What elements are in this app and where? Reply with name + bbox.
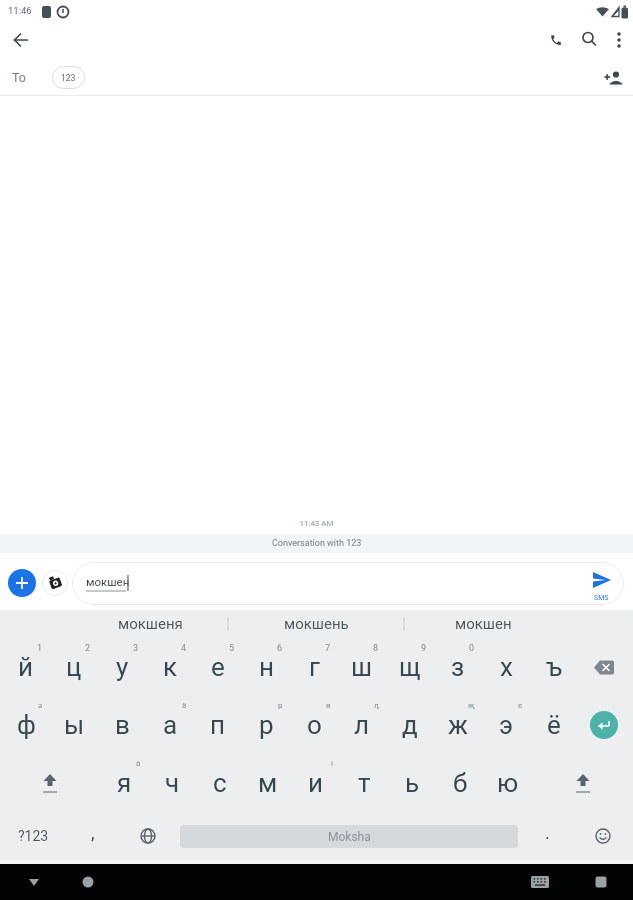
staticText: з xyxy=(451,652,465,682)
button[interactable]: ж xyxy=(434,696,482,754)
button[interactable] xyxy=(0,754,100,812)
button[interactable]: в xyxy=(98,696,146,754)
button[interactable]: ё xyxy=(530,696,578,754)
button[interactable]: э xyxy=(482,696,530,754)
button[interactable]: ?123 xyxy=(0,812,66,860)
button[interactable]: мокшеня xyxy=(75,610,225,638)
button[interactable]: ц xyxy=(50,638,98,696)
button[interactable] xyxy=(598,64,628,94)
staticText: я xyxy=(117,768,132,798)
staticText: ө xyxy=(326,701,331,710)
button[interactable] xyxy=(541,25,571,55)
button[interactable]: р xyxy=(242,696,290,754)
button[interactable]: мокшен xyxy=(72,562,624,605)
staticText: 1 xyxy=(37,643,43,654)
button[interactable] xyxy=(605,25,633,53)
button[interactable]: г xyxy=(290,638,338,696)
button[interactable]: с xyxy=(196,754,244,812)
button[interactable]: н xyxy=(242,638,290,696)
button[interactable]: ь xyxy=(388,754,436,812)
button[interactable] xyxy=(532,754,633,812)
button[interactable]: мокшен xyxy=(408,610,558,638)
staticText: ч xyxy=(165,768,180,798)
staticText: 3 xyxy=(133,643,139,654)
button[interactable] xyxy=(572,812,633,860)
staticText: к xyxy=(163,652,178,682)
button[interactable]: а xyxy=(146,696,194,754)
staticText: ?123 xyxy=(18,828,49,844)
staticText: ä xyxy=(182,701,187,710)
button[interactable]: я xyxy=(100,754,148,812)
staticText: л xyxy=(354,710,370,740)
button[interactable] xyxy=(120,812,176,860)
button[interactable]: Moksha xyxy=(176,812,522,860)
staticText: а xyxy=(163,710,178,740)
staticText: у xyxy=(116,652,129,682)
staticText: й xyxy=(18,652,34,682)
staticText: и xyxy=(308,768,324,798)
staticText: с xyxy=(213,768,227,798)
staticText: х xyxy=(500,652,513,682)
button[interactable]: х xyxy=(482,638,530,696)
button[interactable]: о xyxy=(290,696,338,754)
button[interactable]: ч xyxy=(148,754,196,812)
button[interactable] xyxy=(6,25,38,57)
staticText: 5 xyxy=(229,643,235,654)
button[interactable] xyxy=(20,868,48,896)
button[interactable]: к xyxy=(146,638,194,696)
staticText: т xyxy=(358,768,371,798)
button[interactable]: . xyxy=(522,812,572,860)
button[interactable]: 123 xyxy=(52,66,85,89)
button[interactable]: й xyxy=(2,638,50,696)
button[interactable] xyxy=(587,868,615,896)
staticText: ю xyxy=(497,768,519,798)
staticText: г xyxy=(309,652,320,682)
staticText: 11:46 xyxy=(8,5,32,16)
button[interactable]: щ xyxy=(386,638,434,696)
button[interactable]: т xyxy=(340,754,388,812)
staticText: 7 xyxy=(325,643,331,654)
staticText: ъ xyxy=(546,652,563,682)
button[interactable]: SMS xyxy=(583,566,619,602)
button[interactable]: у xyxy=(98,638,146,696)
staticText: ӓ xyxy=(136,759,141,768)
staticText: ф xyxy=(17,710,36,740)
staticText: мокшеня xyxy=(118,615,183,633)
button[interactable] xyxy=(578,696,621,754)
staticText: в xyxy=(115,710,130,740)
staticText: є xyxy=(518,701,523,710)
button[interactable]: ф xyxy=(2,696,50,754)
staticText: Moksha xyxy=(328,830,371,844)
staticText: 123 xyxy=(61,73,76,83)
button[interactable] xyxy=(578,638,621,696)
button[interactable] xyxy=(8,569,36,597)
button[interactable]: и xyxy=(292,754,340,812)
button[interactable] xyxy=(74,868,102,896)
button[interactable]: ъ xyxy=(530,638,578,696)
staticText: п xyxy=(210,710,226,740)
button[interactable]: ы xyxy=(50,696,98,754)
button[interactable]: м xyxy=(244,754,292,812)
staticText: о xyxy=(307,710,322,740)
staticText: , xyxy=(91,822,95,843)
staticText: җ xyxy=(468,701,475,710)
button[interactable]: з xyxy=(434,638,482,696)
button[interactable]: ю xyxy=(484,754,532,812)
staticText: щ xyxy=(399,652,421,682)
button[interactable]: мокшень xyxy=(241,610,391,638)
staticText: р xyxy=(259,710,274,740)
button[interactable]: д xyxy=(386,696,434,754)
button[interactable]: п xyxy=(194,696,242,754)
staticText: ё xyxy=(547,710,561,740)
button[interactable]: ш xyxy=(338,638,386,696)
staticText: мокшен xyxy=(86,575,130,588)
button[interactable] xyxy=(42,570,68,596)
button[interactable] xyxy=(526,868,554,896)
staticText: ԓ xyxy=(374,701,379,710)
button[interactable] xyxy=(575,25,605,55)
button[interactable]: л xyxy=(338,696,386,754)
staticText: Conversation with 123 xyxy=(272,538,362,549)
button[interactable]: , xyxy=(66,812,120,860)
button[interactable]: е xyxy=(194,638,242,696)
button[interactable]: б xyxy=(436,754,484,812)
